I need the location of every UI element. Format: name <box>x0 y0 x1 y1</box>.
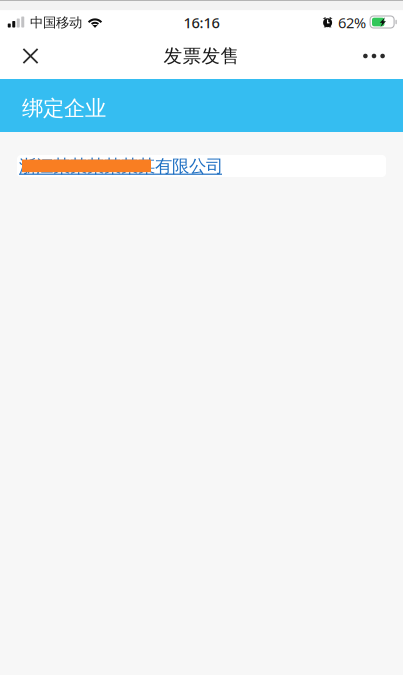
button[interactable]: Close <box>8 33 53 79</box>
staticText: 16:16 <box>183 13 219 32</box>
staticText: 浙江某某某某某某有限公司 <box>19 155 223 177</box>
button[interactable]: More options <box>350 33 395 79</box>
staticText: 62% <box>338 13 366 32</box>
staticText: 发票发售 <box>163 44 239 67</box>
staticText: 中国移动 <box>30 14 82 31</box>
button[interactable]: 浙江某某某某某某有限公司 <box>17 155 386 177</box>
staticText: 绑定企业 <box>22 95 106 122</box>
